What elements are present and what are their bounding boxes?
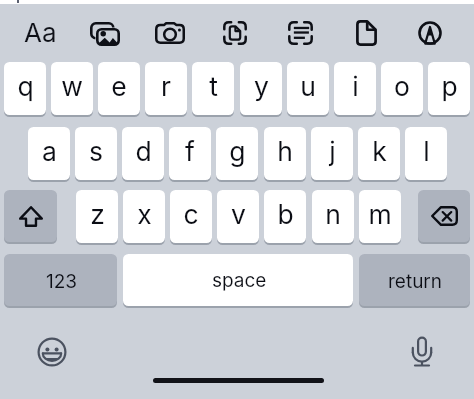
staticText: m (368, 198, 392, 230)
staticText: f (185, 135, 195, 167)
button[interactable]: j (311, 127, 353, 180)
button[interactable]: b (264, 190, 306, 243)
button[interactable]: l (405, 127, 447, 180)
button[interactable]: k (358, 127, 400, 180)
button[interactable]: Shift (4, 190, 57, 242)
staticText: e (111, 70, 127, 102)
staticText: s (89, 135, 103, 167)
button[interactable]: Scan text (277, 10, 323, 56)
staticText: i (352, 70, 359, 102)
button[interactable]: w (51, 62, 93, 115)
staticText: r (161, 70, 171, 102)
staticText: return (388, 270, 443, 293)
staticText: space (212, 269, 267, 292)
button[interactable]: r (145, 62, 187, 115)
button[interactable]: Markup (407, 10, 453, 56)
staticText: j (329, 135, 336, 167)
button[interactable]: d (122, 127, 164, 180)
button[interactable]: v (217, 190, 259, 243)
button[interactable]: u (287, 62, 329, 115)
staticText: h (277, 135, 293, 167)
button[interactable]: e (98, 62, 140, 115)
button[interactable]: q (4, 62, 46, 115)
staticText: p (441, 70, 458, 102)
button[interactable]: p (428, 62, 470, 115)
button[interactable]: h (264, 127, 306, 180)
staticText: c (183, 198, 199, 230)
button[interactable]: s (75, 127, 117, 180)
staticText: w (61, 70, 83, 102)
button[interactable]: x (123, 190, 165, 243)
staticText: k (372, 135, 387, 167)
button[interactable]: n (312, 190, 354, 243)
button[interactable]: Text format (17, 9, 63, 55)
staticText: l (423, 135, 430, 167)
staticText: v (231, 198, 246, 230)
button[interactable]: Emoji (36, 336, 68, 368)
button[interactable]: Scan document (212, 10, 258, 56)
staticText: g (229, 135, 246, 167)
button[interactable]: Backspace (418, 190, 470, 242)
button[interactable]: t (192, 62, 234, 115)
button[interactable]: g (216, 127, 258, 180)
button[interactable]: return (359, 254, 470, 306)
button[interactable]: 123 (4, 254, 117, 306)
button[interactable]: Dictation (406, 336, 438, 366)
button[interactable]: m (359, 190, 401, 243)
staticText: 123 (46, 270, 78, 293)
button[interactable]: Camera (147, 10, 193, 56)
button[interactable]: i (334, 62, 376, 115)
button[interactable]: o (381, 62, 423, 115)
staticText: q (17, 70, 34, 102)
staticText: t (209, 70, 218, 102)
staticText: z (90, 198, 105, 230)
staticText: u (300, 70, 316, 102)
button[interactable]: z (76, 190, 118, 243)
staticText: a (42, 135, 57, 167)
button[interactable]: a (28, 127, 70, 180)
staticText: y (254, 70, 269, 102)
button[interactable]: Photos (82, 11, 128, 57)
staticText: b (277, 198, 294, 230)
button[interactable]: space (123, 254, 353, 306)
staticText: o (394, 70, 410, 102)
staticText: x (137, 198, 152, 230)
button[interactable]: Document (343, 10, 389, 56)
button[interactable]: f (169, 127, 211, 180)
button[interactable]: y (240, 62, 282, 115)
staticText: n (325, 198, 341, 230)
button[interactable]: c (170, 190, 212, 243)
staticText: d (135, 135, 152, 167)
staticText: Aa (24, 17, 57, 48)
